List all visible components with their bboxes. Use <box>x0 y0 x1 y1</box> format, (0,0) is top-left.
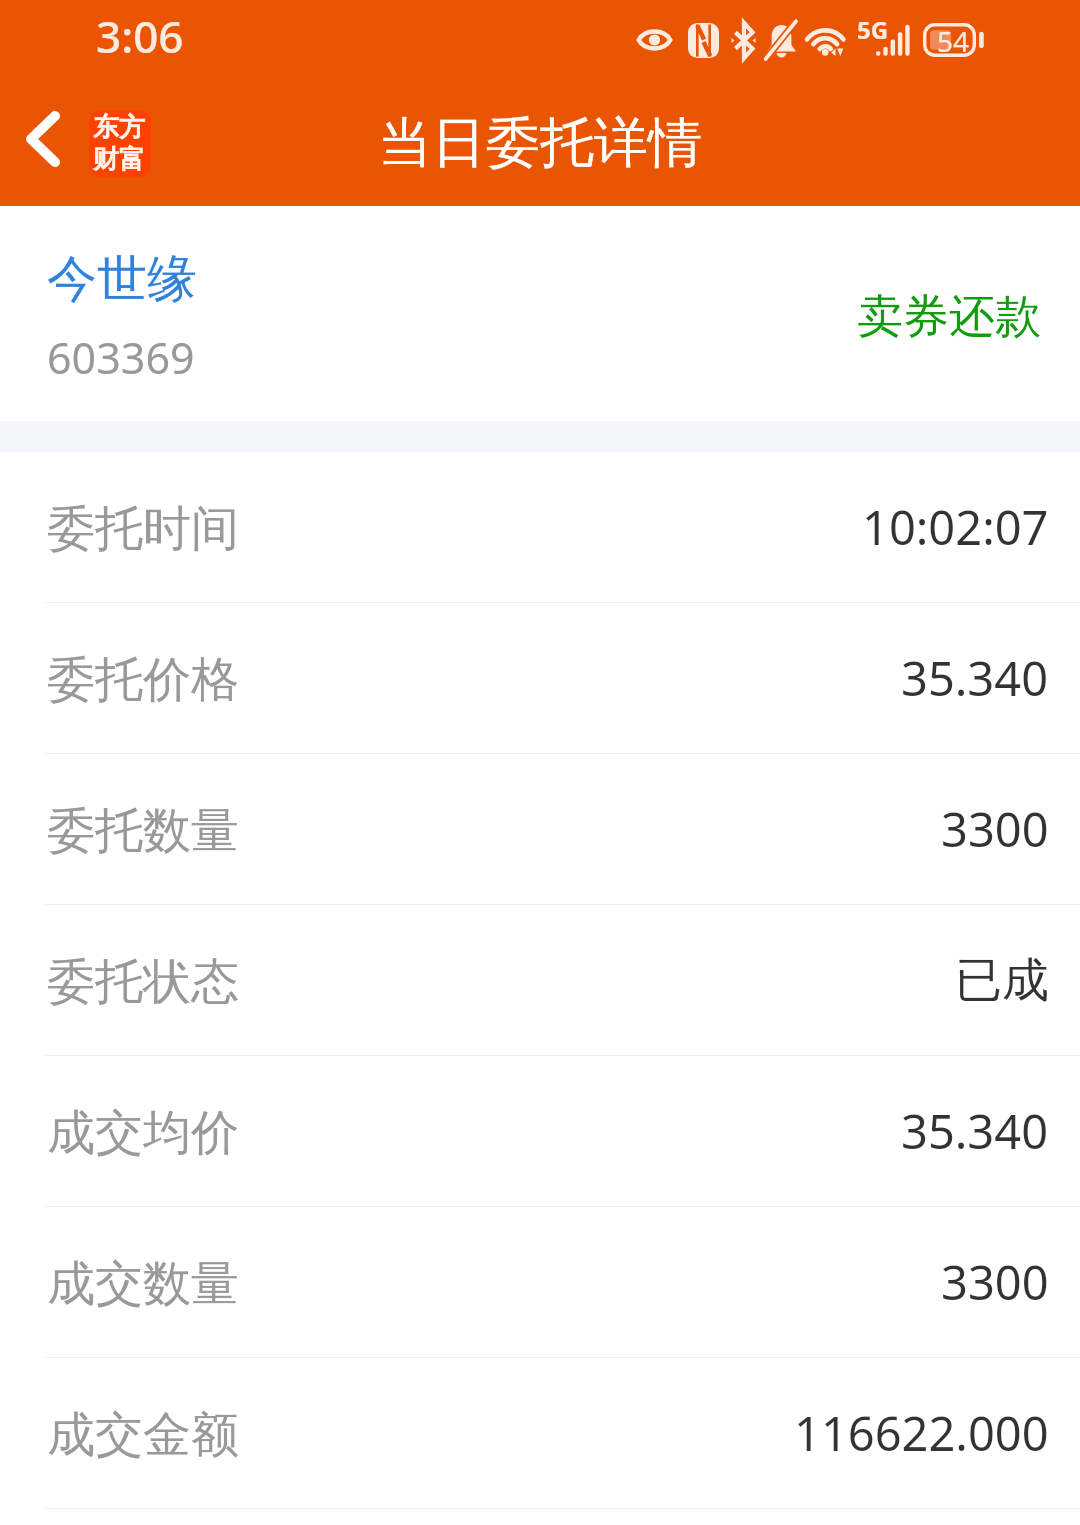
staticText: 委托价格 <box>47 650 239 710</box>
staticText: 35.340 <box>901 1099 1049 1163</box>
button[interactable]: 成交均价 <box>0 1056 1080 1206</box>
staticText: 东方 <box>93 111 145 144</box>
button[interactable]: Back <box>0 80 84 206</box>
staticText: 54 <box>937 22 970 56</box>
button[interactable]: 成交金额 <box>0 1358 1080 1508</box>
staticText: 财富 <box>93 143 145 176</box>
staticText: 委托数量 <box>47 801 239 861</box>
staticText: 成交数量 <box>47 1254 239 1314</box>
staticText: 116622.000 <box>794 1401 1049 1465</box>
staticText: 当日委托详情 <box>378 109 702 177</box>
staticText: 3:06 <box>96 6 184 66</box>
staticText: 3300 <box>941 1250 1049 1314</box>
button[interactable]: 委托时间 <box>0 452 1080 602</box>
button[interactable]: 委托价格 <box>0 603 1080 753</box>
staticText: 成交均价 <box>47 1103 239 1163</box>
button[interactable]: 成交数量 <box>0 1207 1080 1357</box>
staticText: 委托时间 <box>47 499 239 559</box>
button[interactable]: East Money logo <box>89 110 151 177</box>
staticText: 委托状态 <box>47 952 239 1012</box>
button[interactable]: 委托状态 <box>0 905 1080 1055</box>
staticText: 10:02:07 <box>862 495 1049 559</box>
staticText: 5G <box>857 13 889 46</box>
staticText: 成交金额 <box>47 1405 239 1465</box>
staticText: 卖券还款 <box>857 288 1041 346</box>
staticText: 今世缘 <box>47 248 197 311</box>
button[interactable]: 今世缘 <box>0 206 1080 421</box>
staticText: 603369 <box>47 328 195 387</box>
staticText: 3300 <box>941 797 1049 861</box>
staticText: 已成 <box>955 951 1049 1010</box>
staticText: 35.340 <box>901 646 1049 710</box>
button[interactable]: 委托数量 <box>0 754 1080 904</box>
